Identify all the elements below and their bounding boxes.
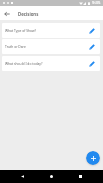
- staticText: What Type of Show?: [5, 28, 89, 32]
- button[interactable]: Home: [46, 171, 57, 182]
- staticText: What should I do today?: [5, 61, 89, 65]
- button[interactable]: Truth or Dare: [2, 39, 100, 54]
- button[interactable]: Back: [0, 6, 14, 20]
- button[interactable]: Recents: [75, 171, 86, 182]
- button[interactable]: What should I do today?: [2, 56, 100, 71]
- button[interactable]: Edit: [89, 60, 97, 68]
- staticText: Truth or Dare: [5, 44, 89, 48]
- button[interactable]: Edit: [89, 27, 97, 35]
- button[interactable]: What Type of Show?: [2, 23, 100, 38]
- staticText: Decisions: [18, 11, 39, 17]
- button[interactable]: Back: [17, 171, 28, 182]
- button[interactable]: Edit: [89, 43, 97, 51]
- button[interactable]: Add: [86, 151, 100, 165]
- staticText: 9:35: [92, 0, 101, 6]
